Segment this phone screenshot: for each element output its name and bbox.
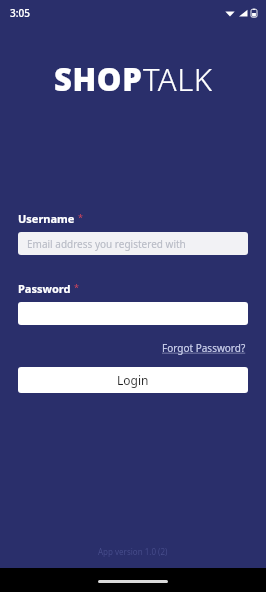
staticText: * [78,211,83,223]
button[interactable]: Login [18,367,248,393]
staticText: 3:05 [10,6,30,20]
button[interactable]: Forgot Password? [160,339,248,357]
staticText: * [74,281,79,293]
staticText: Username [18,211,75,226]
staticText: Login [117,372,149,388]
staticText: App version 1.0 (2) [98,546,168,557]
staticText: TALK [143,58,213,100]
staticText: SHOP [54,58,143,100]
staticText: Email address you registered with [27,237,186,251]
button[interactable] [18,302,248,325]
staticText: Forgot Password? [162,341,246,355]
staticText: Password [18,281,71,296]
button[interactable]: Email address you registered with [18,232,248,255]
